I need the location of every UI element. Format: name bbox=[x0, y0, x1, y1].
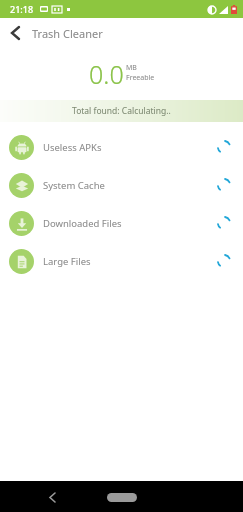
staticText: Trash Cleaner bbox=[32, 26, 103, 41]
staticText: System Cache bbox=[43, 179, 105, 192]
staticText: MB bbox=[126, 63, 137, 73]
button[interactable]: Back bbox=[42, 487, 62, 507]
button[interactable]: Useless APKs bbox=[0, 128, 243, 166]
button[interactable]: Back bbox=[0, 18, 30, 48]
button[interactable]: Downloaded Files bbox=[0, 204, 243, 242]
staticText: 0.0 bbox=[89, 57, 124, 91]
button[interactable]: Large Files bbox=[0, 242, 243, 280]
staticText: Total found: Calculating.. bbox=[72, 105, 171, 117]
button[interactable]: System Cache bbox=[0, 166, 243, 204]
staticText: Freeable bbox=[126, 73, 155, 83]
staticText: Downloaded Files bbox=[43, 217, 122, 230]
staticText: 21:18 bbox=[10, 3, 34, 15]
button[interactable]: Home bbox=[105, 488, 139, 506]
staticText: Large Files bbox=[43, 255, 91, 268]
staticText: Useless APKs bbox=[43, 141, 102, 154]
